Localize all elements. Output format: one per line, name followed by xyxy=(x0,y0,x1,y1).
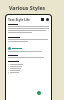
button[interactable] xyxy=(8,71,49,73)
button[interactable] xyxy=(8,69,49,71)
button[interactable] xyxy=(8,46,49,50)
staticText: Various Styles xyxy=(9,4,46,11)
staticText: Text Style Life xyxy=(8,18,31,22)
button[interactable] xyxy=(8,63,49,65)
button[interactable] xyxy=(8,65,49,67)
button[interactable]: Search xyxy=(46,18,49,21)
button[interactable] xyxy=(8,67,49,69)
button[interactable]: Add xyxy=(37,91,41,95)
